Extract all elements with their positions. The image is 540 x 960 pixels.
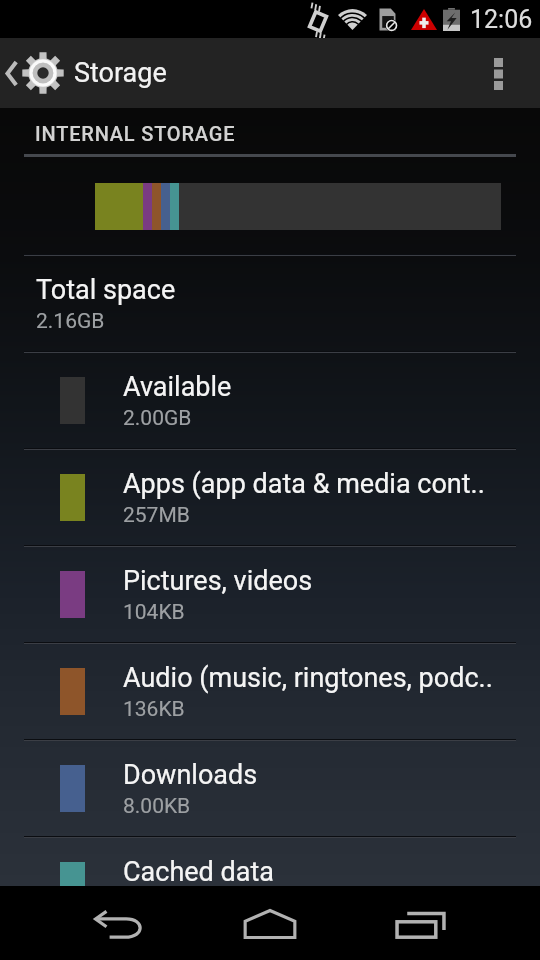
staticText: INTERNAL STORAGE [35, 122, 236, 145]
button[interactable]: Recent apps [345, 886, 495, 960]
button[interactable]: Apps (app data & media cont.. [0, 450, 540, 545]
staticText: 12:06 [470, 5, 533, 34]
staticText: Available [123, 371, 232, 403]
button[interactable]: Home [195, 886, 345, 960]
staticText: Total space [36, 274, 176, 306]
button[interactable]: More options [456, 38, 540, 108]
button[interactable]: Navigate up [0, 38, 167, 108]
staticText: Cached data [123, 856, 274, 886]
other: Navigate up [6, 62, 18, 85]
staticText: 136KB [123, 697, 185, 722]
staticText: 2.16GB [36, 309, 105, 334]
button[interactable]: Total space [0, 256, 540, 351]
button[interactable]: Available [0, 353, 540, 448]
staticText: Storage [74, 57, 167, 89]
button[interactable]: Pictures, videos [0, 547, 540, 642]
button[interactable]: Back [45, 886, 195, 960]
button[interactable]: Cached data [0, 838, 540, 886]
staticText: 8.00KB [123, 794, 191, 819]
staticText: Apps (app data & media cont.. [123, 468, 485, 500]
button[interactable]: Audio (music, ringtones, podc.. [0, 644, 540, 739]
staticText: 257MB [123, 503, 190, 528]
staticText: Pictures, videos [123, 565, 313, 597]
staticText: 104KB [123, 600, 185, 625]
staticText: Audio (music, ringtones, podc.. [123, 662, 493, 694]
button[interactable]: Downloads [0, 741, 540, 836]
staticText: Downloads [123, 759, 258, 791]
staticText: 2.00GB [123, 406, 192, 431]
